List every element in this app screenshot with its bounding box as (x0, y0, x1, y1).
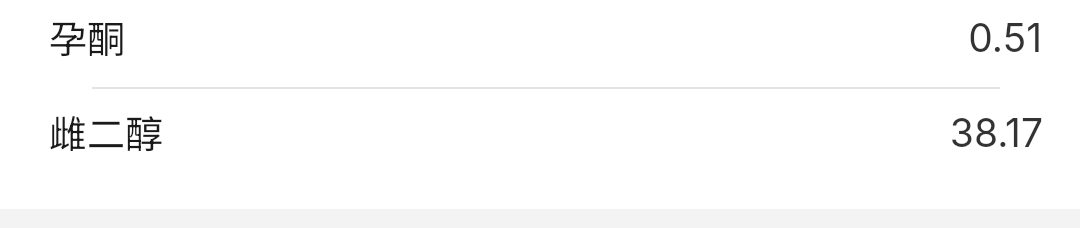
button[interactable]: 雌二醇 (0, 89, 1080, 208)
button[interactable]: 孕酮 (0, 0, 1080, 88)
staticText: 孕酮 (49, 9, 126, 64)
staticText: 0.51 (942, 14, 1042, 61)
staticText: 38.17 (943, 109, 1043, 156)
staticText: 雌二醇 (49, 104, 164, 159)
